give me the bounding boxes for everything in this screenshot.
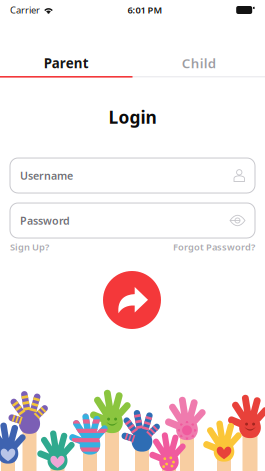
- button[interactable]: Forgot Password?: [173, 241, 255, 253]
- staticText: 6:01 PM: [128, 4, 163, 16]
- staticText: Login: [108, 105, 156, 128]
- staticText: Username: [20, 168, 73, 183]
- staticText: Carrier: [10, 4, 40, 16]
- button[interactable]: Parent: [0, 20, 132, 76]
- staticText: Forgot Password?: [173, 241, 255, 253]
- button[interactable]: Child: [132, 20, 265, 76]
- button[interactable]: Login: [103, 271, 161, 329]
- button[interactable]: Sign Up?: [10, 241, 49, 253]
- staticText: Child: [182, 54, 216, 72]
- staticText: Sign Up?: [10, 241, 49, 253]
- staticText: Parent: [44, 54, 89, 72]
- staticText: Password: [20, 213, 70, 228]
